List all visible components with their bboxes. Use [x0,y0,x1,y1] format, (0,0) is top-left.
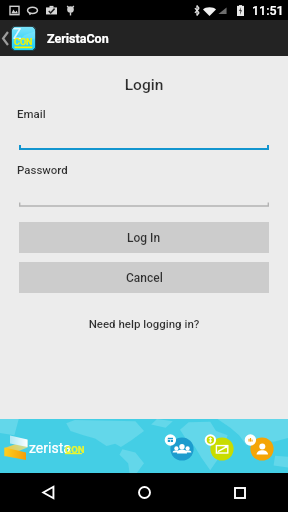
staticText: zerista [29,440,71,456]
staticText: Email [17,107,46,120]
staticText: Log In [127,231,161,245]
staticText: Login [0,76,288,94]
staticText: CON [14,37,33,48]
staticText: Z [13,26,22,42]
button[interactable]: Log In [19,222,269,253]
button[interactable]: Recent apps [192,473,288,512]
button[interactable]: Cancel [19,262,269,293]
staticText: 11:51 [252,3,284,18]
staticText: Password [17,163,68,176]
button[interactable]: zerista [0,419,288,473]
staticText: Cancel [126,271,163,285]
staticText: CON [65,444,85,455]
button[interactable]: Navigate up [0,20,36,56]
button[interactable]: Back [0,473,96,512]
button[interactable]: Need help logging in? [0,317,288,330]
button[interactable]: Home [96,473,192,512]
staticText: ZeristaCon [47,31,109,46]
